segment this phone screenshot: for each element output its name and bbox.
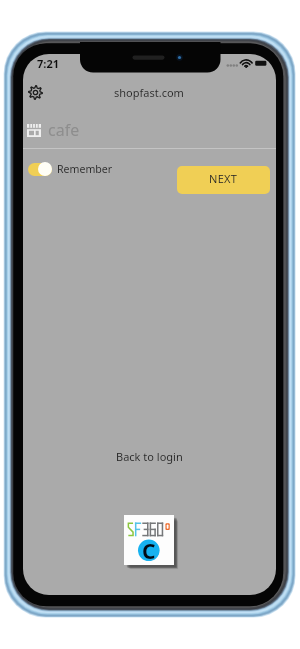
- staticText: NEXT: [209, 171, 238, 186]
- staticText: shopfast.com: [114, 85, 184, 100]
- button[interactable]: NEXT: [177, 166, 270, 194]
- staticText: 7:21: [37, 56, 59, 71]
- staticText: Remember: [57, 162, 113, 176]
- staticText: C: [142, 537, 156, 566]
- staticText: cafe: [48, 119, 80, 141]
- button[interactable]: Settings: [23, 80, 47, 104]
- button[interactable]: Back to login: [110, 446, 189, 467]
- staticText: Back to login: [116, 449, 183, 464]
- button[interactable]: Remember: [26, 160, 115, 178]
